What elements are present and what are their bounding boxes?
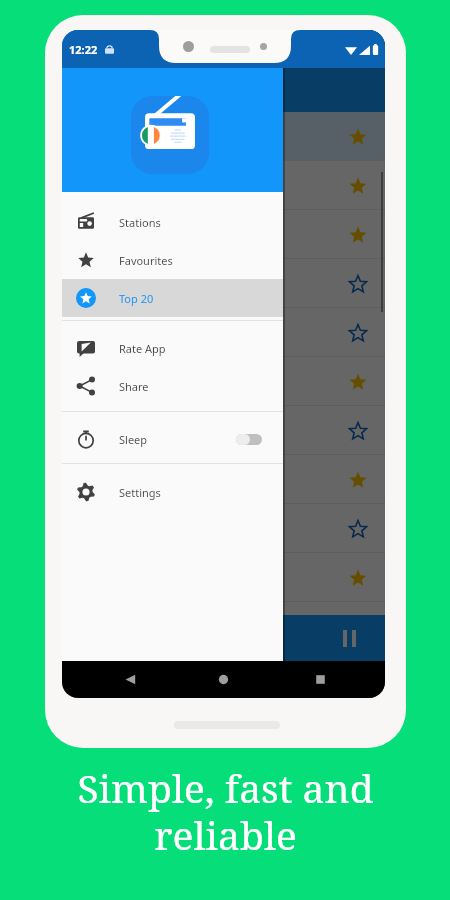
button[interactable]: Add to favourites [62,259,385,308]
staticText: Settings [119,485,161,500]
staticText: Top 20 [119,291,154,306]
staticText: 12:22 [69,42,98,57]
button[interactable]: Remove from favourites [349,569,367,587]
staticText: Sleep [119,432,148,447]
button[interactable]: Remove from favourites [62,455,385,504]
button[interactable]: Add to favourites [62,308,385,357]
button[interactable]: Home [217,673,230,686]
button[interactable]: Remove from favourites [349,373,367,391]
button[interactable]: Recent apps [314,673,327,686]
button[interactable]: Back [124,673,137,686]
button[interactable]: Remove from favourites [62,161,385,210]
button[interactable]: Add to favourites [62,504,385,553]
button[interactable]: Add to favourites [62,406,385,455]
button[interactable]: Top 20 [62,279,283,317]
staticText: Rate App [119,341,166,356]
button[interactable]: Remove from favourites [349,226,367,244]
button[interactable] [62,30,283,192]
button[interactable]: Settings [62,473,283,511]
button[interactable]: Share [62,367,283,405]
staticText: Share [119,379,149,394]
button[interactable]: Remove from favourites [62,357,385,406]
button[interactable]: Favourites [62,241,283,279]
button[interactable]: Remove from favourites [62,112,385,161]
staticText: Stations [119,215,161,230]
button[interactable]: Remove from favourites [62,210,385,259]
button[interactable]: Sleep [62,420,283,458]
button[interactable]: Add to favourites [349,422,367,440]
button[interactable]: Pause [62,615,385,661]
button[interactable]: Remove from favourites [349,128,367,146]
staticText: Simple, fast and reliable [77,761,374,861]
button[interactable]: Stations [62,203,283,241]
button[interactable]: Add to favourites [349,275,367,293]
button[interactable]: Remove from favourites [349,471,367,489]
button[interactable]: Add to favourites [349,324,367,342]
button[interactable]: Remove from favourites [62,553,385,602]
button[interactable]: Add to favourites [349,520,367,538]
staticText: Favourites [119,253,173,268]
button[interactable]: Rate App [62,329,283,367]
button[interactable]: Remove from favourites [349,177,367,195]
button[interactable]: Pause [343,630,356,647]
